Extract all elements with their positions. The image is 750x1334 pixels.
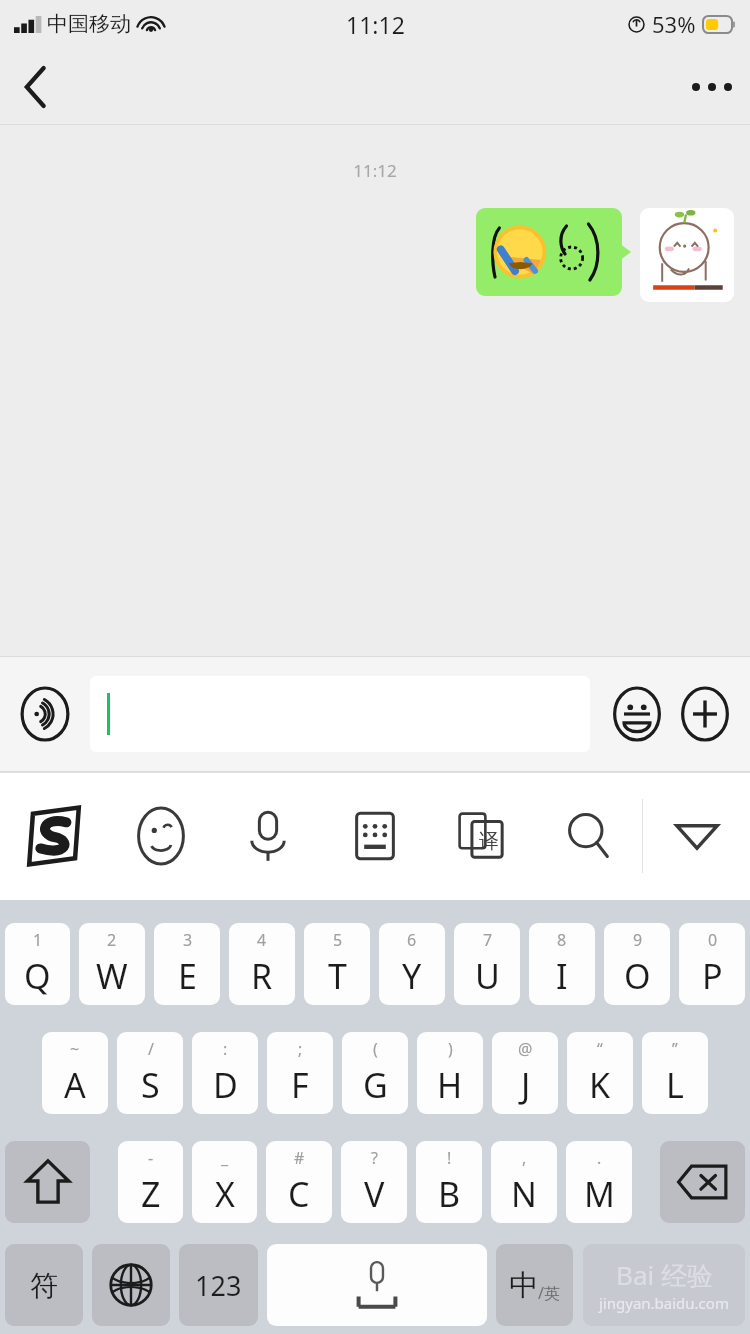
staticText: ; bbox=[298, 1038, 303, 1060]
staticText: Y bbox=[402, 953, 422, 999]
button[interactable] bbox=[90, 676, 590, 752]
staticText: 中 bbox=[509, 1267, 538, 1304]
button[interactable]: ; bbox=[267, 1032, 333, 1114]
button[interactable]: Emoji bbox=[606, 683, 668, 745]
button[interactable]: ) bbox=[417, 1032, 483, 1114]
button[interactable]: ? bbox=[341, 1141, 407, 1223]
staticText: 3 bbox=[183, 929, 193, 951]
button[interactable]: 符 bbox=[5, 1244, 83, 1326]
button[interactable]: ( bbox=[342, 1032, 408, 1114]
staticText: /英 bbox=[538, 1282, 560, 1304]
staticText: 符 bbox=[30, 1268, 58, 1303]
staticText: ~ bbox=[70, 1038, 80, 1060]
staticText: @ bbox=[518, 1038, 533, 1060]
staticText: 53% bbox=[652, 9, 696, 39]
staticText: ” bbox=[672, 1038, 678, 1060]
staticText: A bbox=[64, 1062, 86, 1108]
staticText: - bbox=[148, 1147, 154, 1169]
staticText: 9 bbox=[633, 929, 643, 951]
button[interactable]: 6 bbox=[379, 923, 445, 1005]
button[interactable]: # bbox=[266, 1141, 332, 1223]
button[interactable]: More bbox=[674, 49, 750, 125]
button[interactable]: . bbox=[566, 1141, 632, 1223]
button[interactable]: Translate bbox=[428, 772, 535, 900]
staticText: Z bbox=[141, 1171, 161, 1217]
staticText: R bbox=[251, 953, 273, 999]
staticText: 6 bbox=[407, 929, 417, 951]
staticText: jingyan.baidu.com bbox=[599, 1293, 729, 1313]
staticText: “ bbox=[597, 1038, 603, 1060]
staticText: 5 bbox=[333, 929, 343, 951]
button[interactable]: ” bbox=[642, 1032, 708, 1114]
button[interactable]: 9 bbox=[604, 923, 670, 1005]
staticText: ? bbox=[371, 1147, 378, 1169]
button[interactable]: - bbox=[118, 1141, 183, 1223]
button[interactable]: More actions bbox=[674, 683, 736, 745]
button[interactable]: Voice bbox=[214, 772, 321, 900]
button[interactable]: Shift bbox=[5, 1141, 90, 1223]
staticText: 中国移动 bbox=[47, 11, 131, 37]
staticText: F bbox=[291, 1062, 309, 1108]
staticText: M bbox=[584, 1171, 615, 1217]
button[interactable]: Search bbox=[535, 772, 642, 900]
button[interactable]: 2 bbox=[79, 923, 145, 1005]
button[interactable]: _ bbox=[192, 1141, 257, 1223]
button[interactable]: 0 bbox=[679, 923, 745, 1005]
button[interactable]: Baidu Jingyan bbox=[583, 1244, 745, 1326]
staticText: I bbox=[556, 953, 568, 999]
staticText: . bbox=[597, 1147, 602, 1169]
staticText: 11:12 bbox=[346, 9, 405, 40]
staticText: L bbox=[666, 1062, 684, 1108]
button[interactable]: “ bbox=[567, 1032, 633, 1114]
button[interactable]: Voice input bbox=[14, 683, 76, 745]
staticText: W bbox=[96, 953, 128, 999]
staticText: 1 bbox=[33, 929, 43, 951]
button[interactable]: : bbox=[192, 1032, 258, 1114]
button[interactable]: Sticker bbox=[640, 208, 734, 302]
button[interactable]: Sogou bbox=[0, 772, 107, 900]
button[interactable]: Keyboard layout bbox=[321, 772, 428, 900]
staticText: 123 bbox=[195, 1267, 242, 1304]
staticText: U bbox=[475, 953, 500, 999]
button[interactable]: 4 bbox=[229, 923, 295, 1005]
button[interactable]: ~ bbox=[42, 1032, 108, 1114]
staticText: J bbox=[521, 1062, 531, 1108]
button[interactable]: Backspace bbox=[660, 1141, 745, 1223]
staticText: B bbox=[438, 1171, 461, 1217]
button[interactable]: , bbox=[491, 1141, 557, 1223]
button[interactable]: 5 bbox=[304, 923, 370, 1005]
staticText: N bbox=[511, 1171, 537, 1217]
button[interactable]: Chinese English toggle bbox=[496, 1244, 573, 1326]
button[interactable]: Space bbox=[267, 1244, 487, 1326]
staticText: S bbox=[141, 1062, 160, 1108]
button[interactable] bbox=[476, 208, 622, 296]
staticText: 8 bbox=[557, 929, 567, 951]
button[interactable]: @ bbox=[492, 1032, 558, 1114]
button[interactable]: Hide keyboard bbox=[643, 772, 750, 900]
staticText: Bai 经验 bbox=[616, 1257, 713, 1293]
staticText: , bbox=[522, 1147, 527, 1169]
staticText: D bbox=[213, 1062, 238, 1108]
staticText: 4 bbox=[257, 929, 267, 951]
button[interactable]: 8 bbox=[529, 923, 595, 1005]
staticText: P bbox=[702, 953, 723, 999]
button[interactable]: 1 bbox=[5, 923, 70, 1005]
staticText: O bbox=[624, 953, 651, 999]
button[interactable]: 123 bbox=[179, 1244, 258, 1326]
button[interactable]: / bbox=[117, 1032, 183, 1114]
staticText: ) bbox=[448, 1038, 453, 1060]
staticText: ( bbox=[373, 1038, 378, 1060]
button[interactable]: 3 bbox=[154, 923, 220, 1005]
staticText: Q bbox=[24, 953, 51, 999]
button[interactable]: Change language bbox=[92, 1244, 170, 1326]
button[interactable]: 7 bbox=[454, 923, 520, 1005]
button[interactable]: Emoticon bbox=[107, 772, 214, 900]
staticText: H bbox=[437, 1062, 463, 1108]
staticText: ! bbox=[447, 1147, 452, 1169]
staticText: G bbox=[363, 1062, 388, 1108]
staticText: # bbox=[294, 1147, 305, 1169]
staticText: 译 bbox=[479, 829, 499, 854]
button[interactable]: Back bbox=[0, 51, 72, 123]
staticText: 7 bbox=[483, 929, 493, 951]
button[interactable]: ! bbox=[416, 1141, 482, 1223]
